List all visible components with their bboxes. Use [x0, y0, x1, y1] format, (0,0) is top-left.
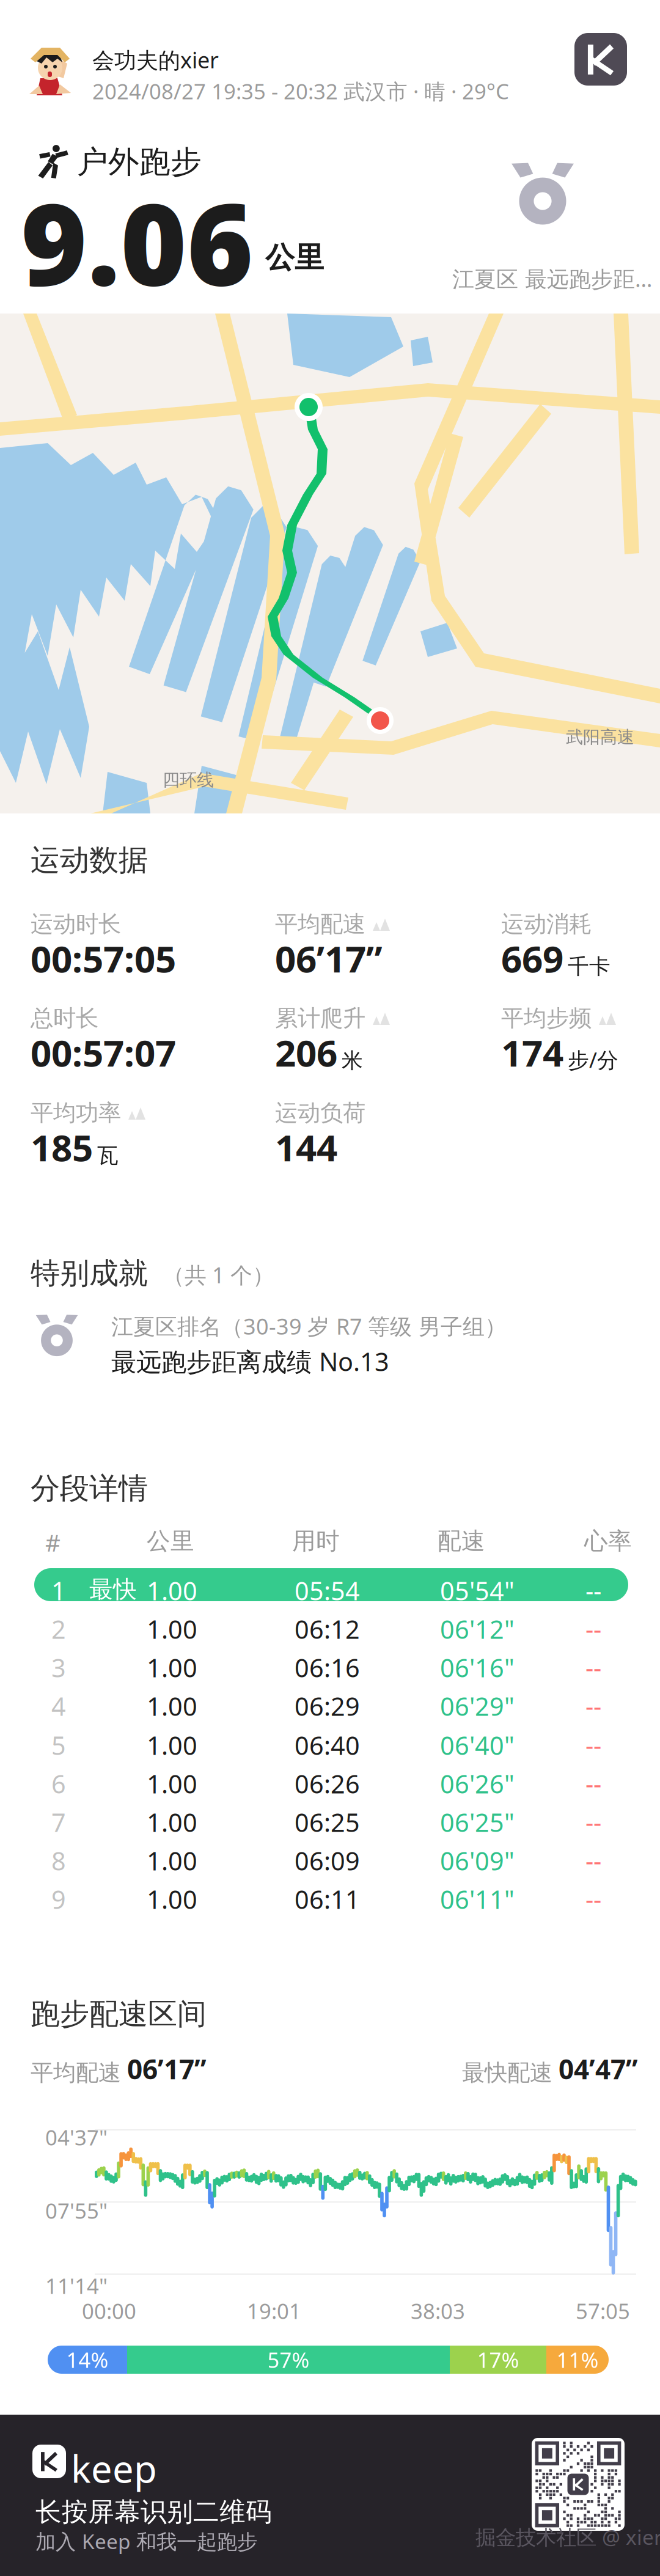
staticText: 669 [501, 934, 563, 983]
staticText: 1 [51, 1574, 66, 1607]
staticText: 6 [51, 1767, 66, 1800]
staticText: 运动负荷 [275, 1099, 365, 1127]
staticText: 掘金技术社区 @ xier [475, 2523, 660, 2551]
staticText: -- [585, 1805, 601, 1839]
staticText: 特别成就 [31, 1255, 148, 1291]
staticText: 户外跑步 [77, 143, 202, 181]
staticText: 平均步频 [501, 1004, 592, 1032]
staticText: 1.00 [147, 1805, 197, 1839]
staticText: 06'40" [440, 1728, 515, 1762]
staticText: 5 [51, 1728, 66, 1762]
staticText: 05'54" [440, 1574, 515, 1607]
staticText: 17% [477, 2346, 519, 2374]
staticText: 19:01 [247, 2297, 301, 2325]
staticText: 06:12 [295, 1612, 360, 1646]
staticText: 累计爬升 [275, 1004, 365, 1032]
staticText: 00:57:07 [31, 1028, 176, 1077]
staticText: 1.00 [147, 1767, 197, 1800]
staticText: 06'11" [440, 1882, 515, 1916]
staticText: 206 [275, 1028, 337, 1077]
staticText: 最快 [89, 1575, 137, 1604]
staticText: 公里 [147, 1527, 194, 1556]
staticText: 38:03 [411, 2297, 465, 2325]
staticText: 1.00 [147, 1728, 197, 1762]
staticText: 06’17” [127, 2051, 207, 2087]
staticText: 06'16" [440, 1651, 515, 1684]
staticText: 11% [556, 2346, 599, 2374]
staticText: 平均配速 [275, 910, 365, 938]
staticText: 174 [501, 1028, 563, 1077]
staticText: 1.00 [147, 1651, 197, 1684]
staticText: -- [585, 1767, 601, 1800]
staticText: 11'14" [45, 2272, 108, 2300]
staticText: 06'12" [440, 1612, 515, 1646]
staticText: 00:00 [82, 2297, 136, 2325]
staticText: 144 [275, 1123, 337, 1172]
staticText: 7 [51, 1805, 66, 1839]
staticText: 9 [51, 1882, 66, 1916]
staticText: 04'37" [45, 2123, 108, 2151]
staticText: 瓦 [97, 1142, 119, 1168]
staticText: 185 [31, 1123, 93, 1172]
staticText: 武阳高速 [566, 727, 634, 748]
staticText: -- [585, 1689, 601, 1723]
staticText: 05:54 [295, 1574, 360, 1607]
staticText: 1.00 [147, 1612, 197, 1646]
staticText: 2 [51, 1612, 66, 1646]
staticText: 9.06 [21, 166, 254, 317]
staticText: -- [585, 1882, 601, 1916]
staticText: 4 [51, 1689, 66, 1723]
staticText: 14% [66, 2346, 108, 2374]
staticText: 运动消耗 [501, 910, 592, 938]
staticText: 1.00 [147, 1844, 197, 1877]
staticText: 07'55" [45, 2196, 108, 2225]
staticText: 06:11 [295, 1882, 360, 1916]
staticText: 06:16 [295, 1651, 360, 1684]
staticText: 06'25" [440, 1805, 515, 1839]
staticText: 06:29 [295, 1689, 360, 1723]
staticText: 米 [342, 1048, 363, 1074]
staticText: 06:25 [295, 1805, 360, 1839]
staticText: -- [585, 1844, 601, 1877]
staticText: 3 [51, 1651, 66, 1684]
staticText: 06'29" [440, 1689, 515, 1723]
staticText: 跑步配速区间 [31, 1996, 207, 2032]
staticText: 1.00 [147, 1689, 197, 1723]
staticText: 57% [267, 2346, 310, 2374]
staticText: -- [585, 1574, 601, 1607]
staticText: 长按屏幕识别二维码 [35, 2496, 272, 2528]
staticText: 1.00 [147, 1882, 197, 1916]
staticText: 江夏区 最远跑步距… [452, 264, 652, 293]
staticText: -- [585, 1651, 601, 1684]
staticText: 运动时长 [31, 910, 121, 938]
staticText: 06:40 [295, 1728, 360, 1762]
staticText: 千卡 [568, 954, 610, 980]
staticText: 运动数据 [31, 842, 148, 878]
staticText: 加入 Keep 和我一起跑步 [35, 2528, 257, 2555]
staticText: 总时长 [31, 1004, 98, 1032]
staticText: 06:09 [295, 1844, 360, 1877]
staticText: 06'26" [440, 1767, 515, 1800]
staticText: keep [71, 2443, 157, 2493]
staticText: 00:57:05 [31, 934, 176, 983]
button[interactable]: Keep [574, 33, 627, 86]
staticText: 06'09" [440, 1844, 515, 1877]
staticText: 06’17” [275, 934, 383, 983]
staticText: 用时 [292, 1527, 340, 1556]
staticText: 8 [51, 1844, 66, 1877]
staticText: 04’47” [559, 2051, 638, 2087]
staticText: 配速 [438, 1527, 485, 1556]
staticText: 江夏区排名（30-39 岁 R7 等级 男子组） [111, 1312, 507, 1341]
staticText: 四环线 [163, 769, 214, 790]
staticText: （共 1 个） [163, 1260, 274, 1289]
staticText: 会功夫的xier [92, 45, 219, 74]
staticText: -- [585, 1612, 601, 1646]
staticText: 1.00 [147, 1574, 197, 1607]
staticText: -- [585, 1728, 601, 1762]
staticText: 06:26 [295, 1767, 360, 1800]
staticText: # [45, 1527, 61, 1558]
staticText: 57:05 [576, 2297, 630, 2325]
staticText: 最远跑步距离成绩 No.13 [111, 1345, 389, 1378]
staticText: 2024/08/27 19:35 - 20:32 武汉市 · 晴 · 29°C [92, 77, 509, 105]
staticText: 分段详情 [31, 1470, 148, 1506]
